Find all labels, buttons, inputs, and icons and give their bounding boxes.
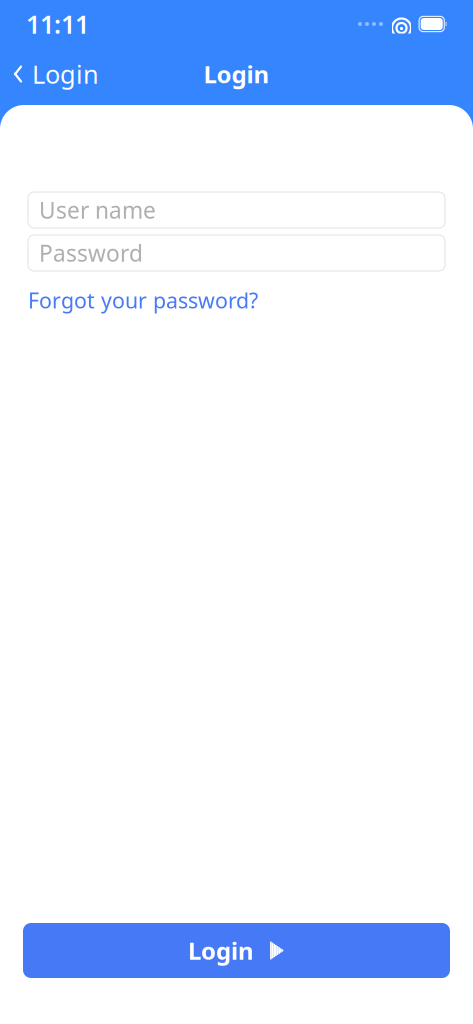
staticText: Login: [188, 935, 254, 966]
button[interactable]: Login: [0, 49, 99, 99]
staticText: 11:11: [26, 7, 89, 41]
staticText: Login: [203, 58, 269, 90]
staticText: Password: [39, 238, 143, 268]
staticText: Login: [32, 57, 99, 91]
button[interactable]: Forgot your password?: [28, 282, 258, 318]
button[interactable]: Login: [23, 923, 450, 978]
staticText: Forgot your password?: [28, 286, 258, 314]
staticText: User name: [39, 195, 156, 225]
